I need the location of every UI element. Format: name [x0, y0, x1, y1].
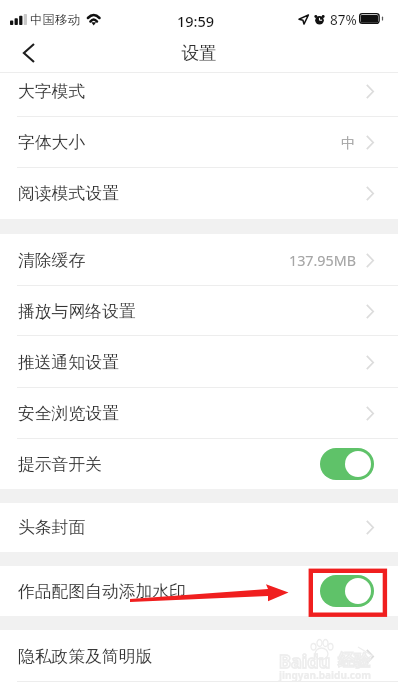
- staticText: 中: [341, 134, 356, 152]
- staticText: jingyan.baidu.com: [279, 668, 371, 682]
- button[interactable]: 头条封面: [0, 503, 398, 552]
- button[interactable]: 大字模式: [0, 73, 398, 117]
- staticText: 播放与网络设置: [18, 301, 136, 322]
- staticText: 提示音开关: [18, 454, 102, 475]
- staticText: 隐私政策及简明版: [18, 646, 153, 667]
- button[interactable]: 播放与网络设置: [0, 286, 398, 336]
- button[interactable]: Toggle switch: [320, 448, 374, 480]
- button[interactable]: 隐私政策及简明版: [0, 630, 398, 682]
- staticText: 阅读模式设置: [18, 183, 119, 204]
- staticText: 安全浏览设置: [18, 403, 119, 424]
- button[interactable]: 阅读模式设置: [0, 168, 398, 219]
- staticText: 大字模式: [18, 81, 86, 102]
- staticText: 19:59: [177, 11, 215, 31]
- staticText: 137.95MB: [289, 251, 356, 270]
- staticText: 87%: [330, 11, 357, 29]
- button[interactable]: Back: [0, 32, 52, 73]
- button[interactable]: 推送通知设置: [0, 336, 398, 388]
- button[interactable]: 字体大小: [0, 117, 398, 168]
- staticText: 字体大小: [18, 132, 86, 153]
- staticText: 设置: [0, 42, 398, 64]
- button[interactable]: 作品配图自动添加水印: [0, 566, 398, 616]
- button[interactable]: 清除缓存: [0, 234, 398, 286]
- button[interactable]: 安全浏览设置: [0, 388, 398, 439]
- staticText: 经验: [338, 651, 370, 671]
- button[interactable]: Toggle switch: [320, 575, 374, 607]
- staticText: 头条封面: [18, 517, 86, 538]
- staticText: 作品配图自动添加水印: [18, 581, 186, 602]
- staticText: 推送通知设置: [18, 352, 119, 373]
- staticText: 清除缓存: [18, 250, 86, 271]
- staticText: 中国移动: [30, 12, 80, 28]
- button[interactable]: 提示音开关: [0, 439, 398, 489]
- staticText: Baidu: [279, 649, 331, 674]
